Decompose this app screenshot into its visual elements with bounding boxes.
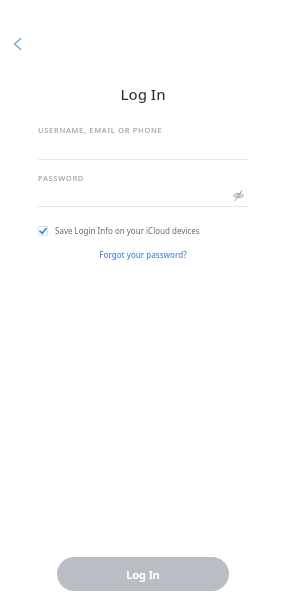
staticText: Forgot your password? — [99, 249, 187, 260]
staticText: Save Login Info on your iCloud devices — [55, 225, 200, 236]
staticText: PASSWORD — [38, 173, 85, 183]
staticText: Log In — [126, 567, 160, 582]
button[interactable]: Log In — [57, 557, 229, 591]
button[interactable]: Back — [2, 28, 34, 60]
staticText: Log In — [120, 84, 166, 104]
button[interactable]: Forgot your password? — [95, 247, 191, 262]
button[interactable]: Save Login Info on your iCloud devices — [38, 225, 200, 236]
button[interactable]: Show password — [228, 185, 248, 205]
staticText: USERNAME, EMAIL OR PHONE — [38, 125, 163, 135]
